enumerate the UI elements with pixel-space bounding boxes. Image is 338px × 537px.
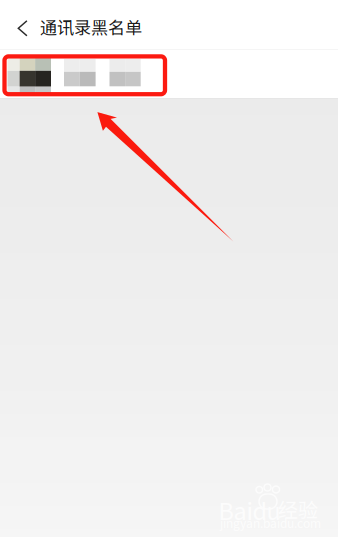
button[interactable]: Back (0, 0, 40, 49)
staticText: 通讯录黑名单 (40, 14, 142, 39)
button[interactable] (0, 50, 338, 98)
